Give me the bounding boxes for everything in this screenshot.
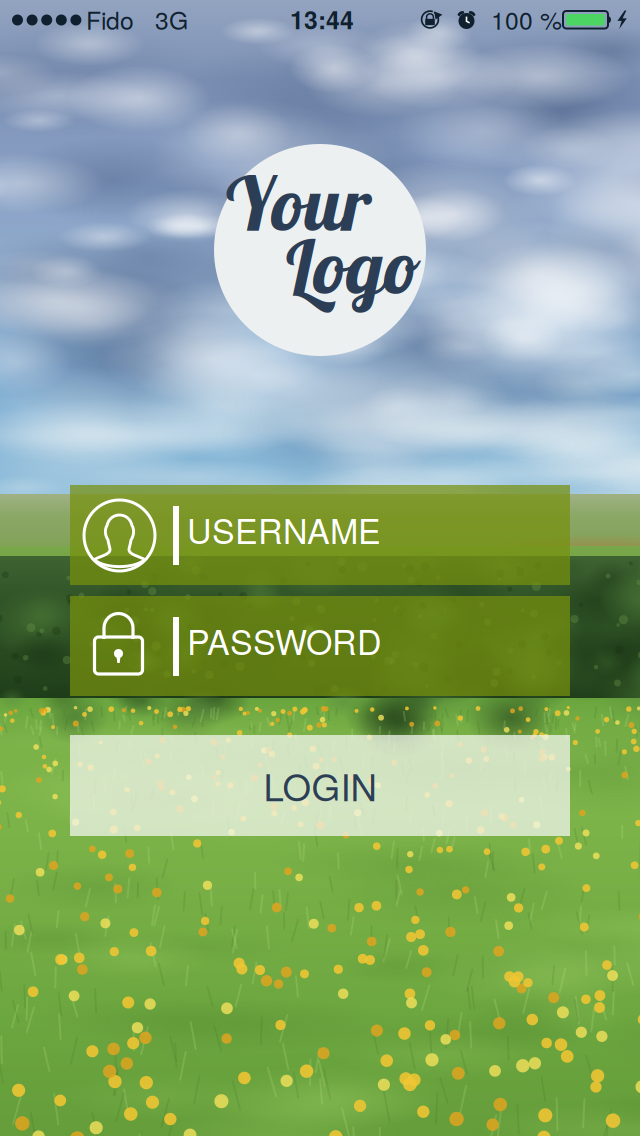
staticText: LOGIN xyxy=(263,759,376,812)
staticText: 13:44 xyxy=(290,1,354,37)
staticText: Your xyxy=(226,156,371,249)
staticText: USERNAME xyxy=(187,505,381,554)
button[interactable]: PASSWORD xyxy=(70,596,570,696)
staticText: 100 % xyxy=(491,1,562,37)
staticText: Logo xyxy=(286,219,421,312)
staticText: Fido xyxy=(86,1,134,37)
staticText: 3G xyxy=(155,1,188,37)
button[interactable]: LOGIN xyxy=(70,735,570,836)
button[interactable]: USERNAME xyxy=(70,485,570,585)
staticText: PASSWORD xyxy=(187,616,382,665)
